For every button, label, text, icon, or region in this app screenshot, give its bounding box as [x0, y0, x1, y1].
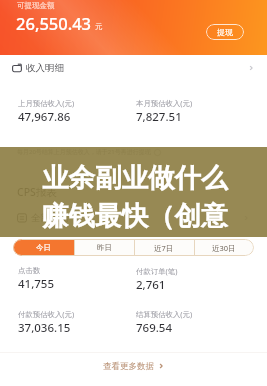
- staticText: 26,550.43: [16, 12, 92, 34]
- button[interactable]: 提现: [206, 24, 244, 40]
- button[interactable]: 查看更多数据: [0, 352, 267, 380]
- staticText: 上月预估收入(元): [18, 98, 75, 108]
- staticText: 全部数据: [31, 212, 69, 224]
- staticText: 业余副业做什么: [42, 161, 228, 194]
- staticText: 结算预估收入(元): [136, 309, 193, 319]
- staticText: 付款订单(笔): [136, 266, 178, 276]
- staticText: 赚钱最快（创意: [42, 199, 228, 232]
- staticText: 近7日: [154, 243, 174, 253]
- staticText: 付款预估收入(元): [18, 309, 75, 319]
- button[interactable]: 近7日: [134, 239, 194, 256]
- staticText: 47,967.86: [18, 109, 71, 125]
- staticText: 2,761: [136, 277, 166, 293]
- button[interactable]: 全部数据: [0, 209, 267, 227]
- staticText: 37,036.15: [18, 320, 71, 336]
- button[interactable]: 近30日: [194, 239, 254, 256]
- staticText: CPS报表: [17, 185, 57, 199]
- staticText: 41,755: [18, 276, 55, 292]
- staticText: 昨日: [97, 243, 112, 252]
- staticText: 今日: [36, 243, 51, 252]
- staticText: 7,827.51: [136, 109, 182, 125]
- staticText: 可提现金额: [17, 1, 55, 10]
- staticText: 查看更多数据: [103, 361, 154, 372]
- staticText: 近30日: [212, 243, 236, 253]
- staticText: 提现: [217, 27, 233, 37]
- staticText: 769.54: [136, 320, 173, 336]
- button[interactable]: 昨日: [74, 239, 134, 256]
- button[interactable]: 收入明细: [0, 55, 267, 81]
- staticText: 元: [95, 22, 103, 31]
- staticText: 点击数: [18, 266, 41, 275]
- staticText: 收入明细: [26, 62, 64, 74]
- button[interactable]: 今日: [13, 239, 74, 256]
- staticText: 本月预估收入(元): [136, 98, 193, 108]
